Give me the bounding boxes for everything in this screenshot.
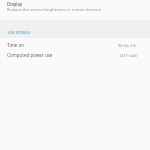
staticText: 9h 0m 27s [118,43,137,48]
button[interactable]: Computed power use [0,50,150,60]
staticText: USE DETAILS [8,30,31,35]
button[interactable]: Time on [0,40,150,50]
staticText: 1417 mAh [119,53,137,58]
button[interactable]: Display [0,0,150,20]
staticText: Display [7,1,23,7]
staticText: Computed power use [7,52,53,58]
staticText: Time on [7,42,25,48]
staticText: Reduce the screen brightness or screen t… [7,7,102,13]
